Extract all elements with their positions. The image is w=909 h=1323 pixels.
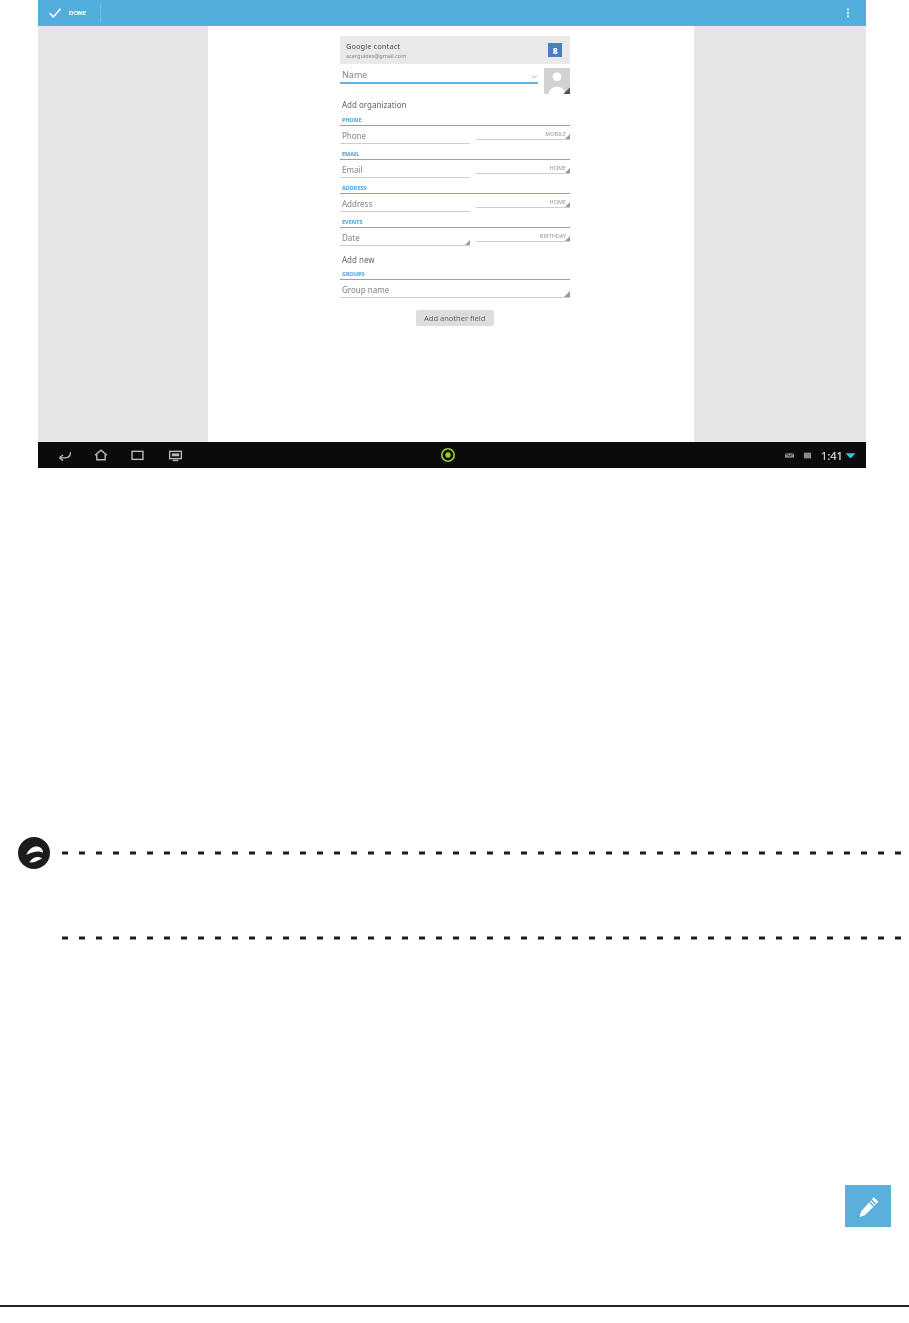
button[interactable]: Recent apps [126, 444, 148, 466]
button[interactable]: Edit [845, 1185, 891, 1227]
button[interactable]: Email [340, 164, 570, 178]
staticText: Google contact [346, 41, 401, 51]
staticText: Phone [342, 130, 367, 141]
button[interactable]: Group name [340, 284, 570, 298]
staticText: MOBILE [476, 130, 566, 137]
button[interactable]: Phone [340, 130, 570, 144]
staticText: Add another field [424, 313, 486, 323]
button[interactable]: Google account [548, 43, 562, 57]
staticText: EMAIL [342, 150, 360, 157]
button[interactable]: More options [840, 5, 856, 21]
button[interactable]: Back [54, 444, 76, 466]
button[interactable]: Add photo [544, 68, 570, 94]
staticText: Date [342, 232, 360, 243]
staticText: 1:41 [821, 448, 843, 463]
staticText: 8 [553, 45, 558, 56]
button[interactable]: DONE [48, 6, 87, 20]
staticText: EVENTS [342, 218, 363, 225]
staticText: acerguides@gmail.com [346, 52, 407, 59]
button[interactable]: Add new [342, 254, 375, 265]
staticText: ADDRESS [342, 184, 367, 191]
button[interactable]: Screen display settings [164, 444, 186, 466]
staticText: GROUPS [342, 270, 365, 277]
staticText: HOME [476, 164, 566, 171]
button[interactable]: Name [340, 68, 538, 84]
staticText: Email [342, 164, 363, 175]
button[interactable]: Google contact [340, 36, 570, 64]
button[interactable]: Date [340, 232, 570, 246]
staticText: DONE [69, 9, 87, 17]
button[interactable]: Add another field [416, 310, 494, 326]
staticText: HOME [476, 198, 566, 205]
button[interactable]: Home [90, 444, 112, 466]
button[interactable]: Address [340, 198, 570, 212]
button[interactable]: Add organization [342, 99, 407, 110]
button[interactable]: Recording [439, 446, 457, 464]
staticText: BIRTHDAY [476, 232, 566, 239]
staticText: Address [342, 198, 373, 209]
staticText: Name [342, 68, 531, 80]
staticText: PHONE [342, 116, 362, 123]
staticText: Group name [342, 284, 390, 295]
